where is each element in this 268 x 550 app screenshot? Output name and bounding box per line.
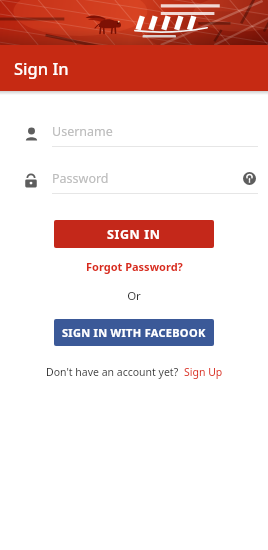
staticText: Or	[10, 288, 258, 304]
button[interactable]: Forgot Password?	[10, 259, 258, 274]
staticText: SIGN IN WITH FACEBOOK	[62, 325, 206, 340]
staticText: Sign In	[14, 57, 69, 79]
button[interactable]: Sign Up	[184, 365, 223, 379]
button[interactable]: Password help	[240, 169, 258, 187]
button[interactable]: SIGN IN WITH FACEBOOK	[54, 319, 214, 346]
staticText: Password	[52, 170, 240, 187]
button[interactable]: Password	[52, 168, 258, 188]
staticText: SIGN IN	[107, 226, 161, 243]
staticText: Username	[52, 123, 258, 140]
button[interactable]: SIGN IN	[54, 220, 214, 248]
button[interactable]: Username	[52, 121, 258, 141]
staticText: Don't have an account yet?	[46, 365, 179, 379]
staticText: Sign Up	[184, 365, 223, 379]
staticText: Forgot Password?	[86, 259, 183, 274]
